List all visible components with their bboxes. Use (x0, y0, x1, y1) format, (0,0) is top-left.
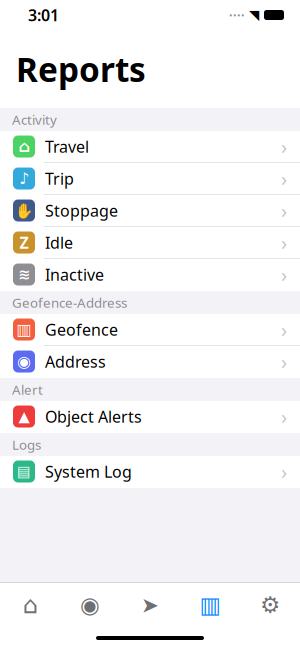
staticText: Geofence (45, 319, 118, 340)
staticText: Activity (12, 111, 57, 128)
staticText: › (281, 197, 287, 224)
staticText: Logs (12, 436, 41, 453)
button[interactable]: Home (0, 583, 60, 627)
staticText: ➤ (141, 593, 159, 617)
staticText: ✋ (15, 202, 33, 219)
button[interactable]: ≋ (0, 259, 300, 291)
staticText: › (281, 348, 287, 375)
button[interactable]: Places (60, 583, 120, 627)
staticText: › (281, 229, 287, 256)
button[interactable]: ◉ (0, 346, 300, 378)
button[interactable]: Reports (180, 583, 240, 627)
staticText: Address (45, 351, 106, 372)
button[interactable]: ▥ (0, 314, 300, 346)
staticText: ◥ (249, 7, 259, 22)
staticText: › (281, 403, 287, 430)
staticText: ◉ (80, 592, 100, 618)
staticText: ≋ (18, 266, 30, 283)
staticText: ▤ (17, 463, 31, 480)
button[interactable]: Z (0, 227, 300, 259)
staticText: › (281, 261, 287, 288)
staticText: Travel (45, 136, 89, 157)
staticText: › (281, 316, 287, 343)
staticText: › (281, 133, 287, 160)
staticText: ⌂ (18, 137, 29, 156)
staticText: Alert (12, 381, 43, 398)
staticText: Reports (16, 47, 146, 91)
staticText: Geofence-Address (12, 294, 127, 311)
button[interactable]: ♪ (0, 163, 300, 195)
button[interactable]: ▤ (0, 456, 300, 488)
staticText: ▥ (16, 320, 31, 339)
staticText: ◉ (17, 352, 31, 371)
staticText: ⌂ (22, 591, 37, 619)
staticText: ♪ (19, 169, 29, 188)
staticText: › (281, 165, 287, 192)
staticText: Trip (45, 168, 74, 189)
staticText: Object Alerts (45, 406, 142, 427)
staticText: Stoppage (45, 200, 118, 221)
staticText: •••• (229, 9, 245, 21)
staticText: ▲ (18, 408, 29, 425)
staticText: Inactive (45, 264, 104, 285)
button[interactable]: ⌂ (0, 131, 300, 163)
staticText: ⚙ (260, 592, 280, 618)
button[interactable]: Navigate (120, 583, 180, 627)
staticText: ▥ (199, 592, 220, 618)
staticText: System Log (45, 461, 132, 482)
staticText: 3:01 (28, 4, 59, 26)
staticText: › (281, 458, 287, 485)
button[interactable]: Settings (240, 583, 300, 627)
button[interactable]: ✋ (0, 195, 300, 227)
staticText: Z (19, 232, 28, 253)
button[interactable]: ▲ (0, 401, 300, 433)
staticText: Idle (45, 232, 73, 253)
